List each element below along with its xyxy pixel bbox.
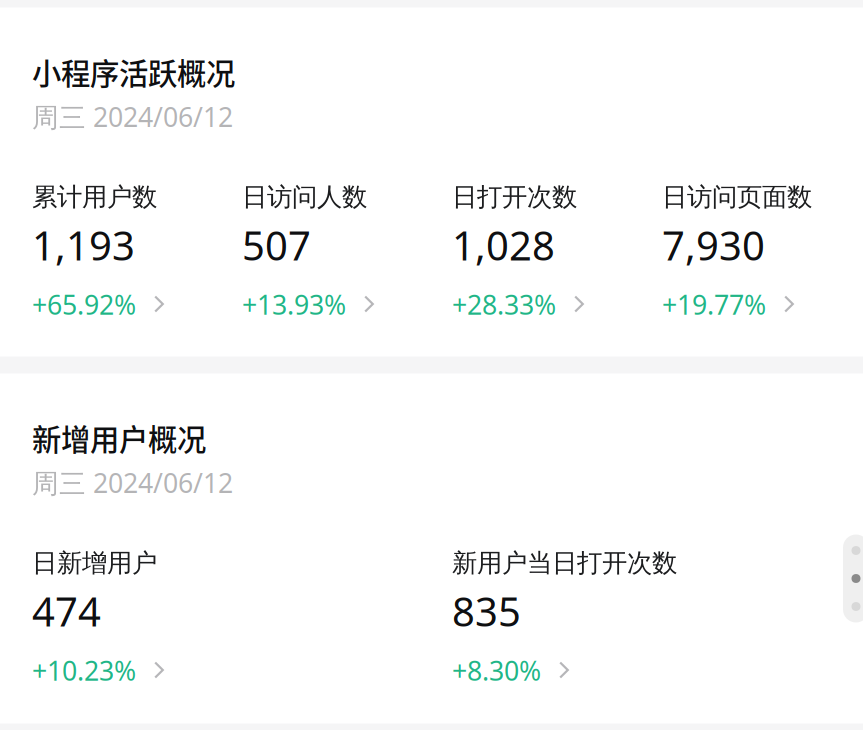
staticText: 累计用户数: [32, 181, 157, 212]
staticText: 新用户当日打开次数: [452, 547, 677, 578]
staticText: 新增用户概况: [32, 416, 206, 459]
button[interactable]: 日新增用户: [32, 547, 452, 688]
staticText: 周三 2024/06/12: [32, 99, 233, 134]
button[interactable]: 日打开次数: [452, 181, 662, 322]
staticText: +28.33%: [452, 287, 556, 322]
staticText: 507: [242, 218, 311, 272]
staticText: 1,193: [32, 218, 135, 272]
staticText: 日访问页面数: [662, 181, 812, 212]
staticText: 周三 2024/06/12: [32, 465, 233, 500]
staticText: 日新增用户: [32, 547, 157, 578]
staticText: 474: [32, 584, 101, 638]
button[interactable]: 日访问页面数: [662, 181, 863, 322]
button[interactable]: 新用户当日打开次数: [452, 547, 863, 688]
staticText: +13.93%: [242, 287, 346, 322]
staticText: 小程序活跃概况: [32, 50, 235, 93]
button[interactable]: 累计用户数: [32, 181, 242, 322]
staticText: +65.92%: [32, 287, 136, 322]
staticText: 835: [452, 584, 521, 638]
staticText: +10.23%: [32, 653, 136, 688]
staticText: 日打开次数: [452, 181, 577, 212]
staticText: 日访问人数: [242, 181, 367, 212]
staticText: 7,930: [662, 218, 765, 272]
staticText: +19.77%: [662, 287, 766, 322]
staticText: 1,028: [452, 218, 555, 272]
staticText: +8.30%: [452, 653, 541, 688]
button[interactable]: 日访问人数: [242, 181, 452, 322]
